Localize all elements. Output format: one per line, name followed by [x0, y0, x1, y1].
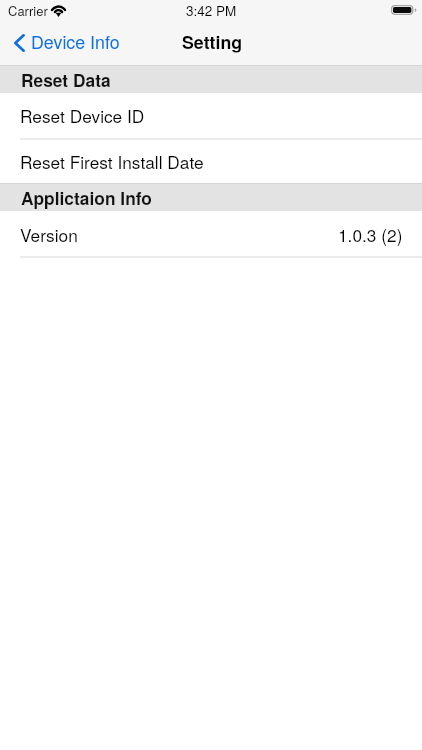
staticText: 3:42 PM — [186, 1, 237, 20]
other: Wi-Fi — [51, 5, 66, 16]
staticText: 1.0.3 (2) — [338, 222, 403, 247]
staticText: Setting — [182, 29, 243, 54]
button[interactable]: Reset Device ID — [0, 93, 422, 138]
button[interactable]: Back — [0, 23, 130, 60]
button[interactable]: Reset Firest Install Date — [0, 139, 422, 183]
staticText: Applictaion Info — [21, 185, 152, 210]
staticText: Carrier — [8, 1, 48, 20]
staticText: Device Info — [31, 29, 120, 54]
staticText: Version — [20, 222, 78, 247]
staticText: Reset Firest Install Date — [20, 149, 204, 174]
other: Battery — [391, 5, 416, 15]
staticText: Reset Data — [21, 67, 111, 92]
staticText: Reset Device ID — [20, 103, 145, 128]
button[interactable]: Version — [0, 211, 422, 257]
other: Back — [14, 34, 25, 52]
